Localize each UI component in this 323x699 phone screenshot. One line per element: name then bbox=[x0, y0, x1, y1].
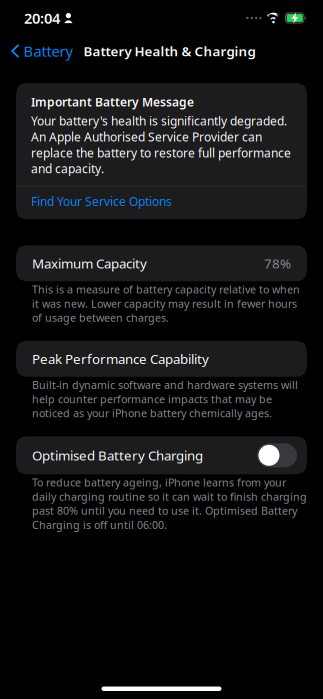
staticText: Important Battery Message bbox=[31, 94, 194, 110]
button[interactable]: Battery bbox=[0, 36, 76, 66]
button[interactable]: Find Your Service Options bbox=[16, 186, 307, 216]
button[interactable]: Peak Performance Capability bbox=[16, 341, 307, 377]
button[interactable]: Maximum Capacity bbox=[16, 245, 307, 281]
staticText: Battery Health & Charging bbox=[83, 42, 255, 60]
staticText: Your battery's health is significantly d… bbox=[31, 113, 291, 177]
button[interactable]: Optimised Battery Charging bbox=[257, 443, 297, 467]
staticText: 20:04 bbox=[24, 8, 60, 28]
staticText: 78% bbox=[264, 254, 291, 272]
staticText: To reduce battery ageing, iPhone learns … bbox=[32, 475, 307, 532]
staticText: This is a measure of battery capacity re… bbox=[32, 282, 300, 325]
staticText: Maximum Capacity bbox=[32, 254, 147, 272]
staticText: Peak Performance Capability bbox=[32, 350, 209, 368]
staticText: Battery bbox=[23, 41, 72, 61]
staticText: Built-in dynamic software and hardware s… bbox=[32, 378, 298, 420]
staticText: Find Your Service Options bbox=[31, 193, 172, 209]
staticText: Optimised Battery Charging bbox=[32, 446, 203, 464]
